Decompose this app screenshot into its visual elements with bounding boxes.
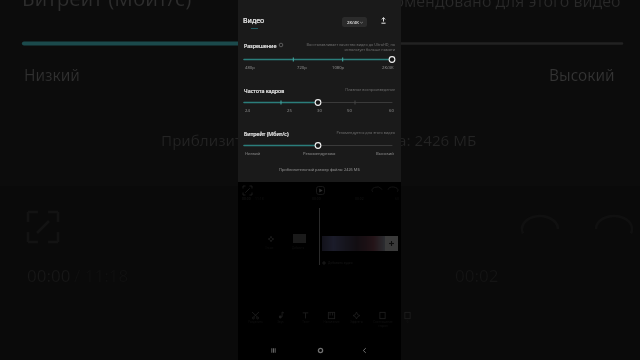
staticText: Эффекты xyxy=(350,320,363,324)
button[interactable]: Разделить xyxy=(243,311,268,324)
staticText: 50 xyxy=(347,108,352,114)
staticText: Рекомендуемая xyxy=(303,151,336,157)
staticText: 00:02 xyxy=(355,196,364,201)
button[interactable]: Redo xyxy=(388,185,398,195)
staticText: 25 xyxy=(287,108,292,114)
staticText: Плавное воспроизведение xyxy=(345,87,395,92)
staticText: Высокий xyxy=(549,65,615,86)
staticText: Битрейт (Мбит/с) xyxy=(244,130,289,137)
staticText: Восстанавливает качество видео до UltraH… xyxy=(306,42,395,52)
staticText: 24 xyxy=(245,108,250,114)
staticText: Низкий xyxy=(245,151,261,157)
staticText: 480p xyxy=(245,65,255,71)
staticText: Частота кадров xyxy=(244,87,285,94)
staticText: Разрешение xyxy=(244,42,277,49)
button[interactable]: Звук xyxy=(268,311,293,324)
button[interactable]: Текст xyxy=(293,311,318,324)
button[interactable]: Ф xyxy=(395,311,420,324)
staticText: Низкий xyxy=(24,65,80,86)
button[interactable]: Play xyxy=(314,184,326,196)
button[interactable]: Add clip xyxy=(385,236,398,251)
button[interactable]: Видео xyxy=(241,15,267,28)
staticText: 720p xyxy=(297,65,307,71)
button[interactable]: Fullscreen xyxy=(242,185,253,196)
staticText: Приблизительный размер файла: 2426 МБ xyxy=(161,130,477,151)
staticText: 30 xyxy=(317,108,322,114)
button[interactable]: Export xyxy=(378,15,389,26)
button[interactable]: Add effect xyxy=(267,235,275,243)
staticText: Битрейт (Мбит/с) xyxy=(22,0,192,12)
button[interactable]: Наложение xyxy=(319,311,344,324)
button[interactable] xyxy=(322,236,385,251)
button[interactable]: Back xyxy=(358,344,371,357)
button[interactable]: Undo xyxy=(372,185,382,195)
staticText: Рекомендовано для этого видео xyxy=(368,0,621,12)
staticText: Добавить аудио xyxy=(328,261,353,265)
staticText: Рекомендуется для этого видео xyxy=(336,130,395,135)
staticText: Видео xyxy=(243,16,265,26)
button[interactable]: Home xyxy=(314,344,327,357)
button[interactable]: Эффекты xyxy=(344,311,369,324)
staticText: Приблизительный размер файла: 2426 МБ xyxy=(279,167,360,172)
staticText: 1080p xyxy=(332,65,345,71)
staticText: 00:00 xyxy=(242,196,251,201)
staticText: 00:00 xyxy=(27,264,71,287)
staticText: 2K/4K xyxy=(347,19,359,25)
button[interactable]: Соотношение сторон xyxy=(370,311,395,328)
staticText: 60 xyxy=(389,108,394,114)
staticText: Высокий xyxy=(376,151,394,157)
staticText: Наложение xyxy=(323,320,340,324)
button[interactable]: 2K/4K xyxy=(342,17,367,27)
staticText: 2K/4K xyxy=(382,65,394,71)
button[interactable]: Recents xyxy=(267,344,280,357)
